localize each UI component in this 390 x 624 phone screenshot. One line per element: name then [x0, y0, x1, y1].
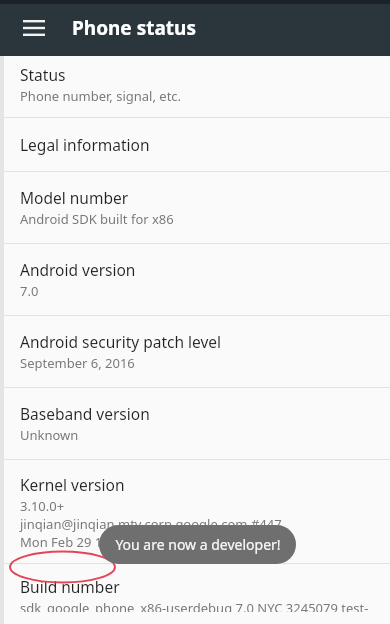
staticText: sdk_google_phone_x86-userdebug 7.0 NYC 3…: [20, 599, 374, 612]
button[interactable]: Android version: [4, 244, 390, 315]
button[interactable]: Legal information: [4, 118, 390, 171]
staticText: Status: [20, 64, 66, 85]
staticText: Kernel version: [20, 474, 125, 495]
button[interactable]: Status: [4, 56, 390, 117]
button[interactable]: Build number: [4, 564, 390, 624]
staticText: Model number: [20, 187, 129, 208]
button[interactable]: Kernel version: [4, 460, 390, 563]
staticText: Android SDK built for x86: [20, 210, 174, 228]
staticText: September 6, 2016: [20, 354, 135, 372]
staticText: Android version: [20, 259, 136, 280]
button[interactable]: Open navigation menu: [14, 8, 54, 48]
staticText: Mon Feb 29 13:34:41 PST 2016: [20, 533, 206, 551]
staticText: 7.0: [20, 282, 39, 300]
button[interactable]: Baseband version: [4, 388, 390, 459]
staticText: Baseband version: [20, 403, 150, 424]
staticText: 3.10.0+: [20, 497, 65, 515]
staticText: You are now a developer!: [115, 535, 281, 554]
staticText: Phone status: [72, 15, 196, 41]
staticText: Legal information: [20, 134, 150, 155]
button[interactable]: Model number: [4, 172, 390, 243]
staticText: Phone number, signal, etc.: [20, 87, 182, 105]
button[interactable]: Android security patch level: [4, 316, 390, 387]
staticText: Unknown: [20, 426, 79, 444]
staticText: jinqian@jinqian.mtv.corp.google.com #447: [20, 515, 282, 533]
staticText: Build number: [20, 576, 120, 597]
staticText: Android security patch level: [20, 331, 222, 352]
